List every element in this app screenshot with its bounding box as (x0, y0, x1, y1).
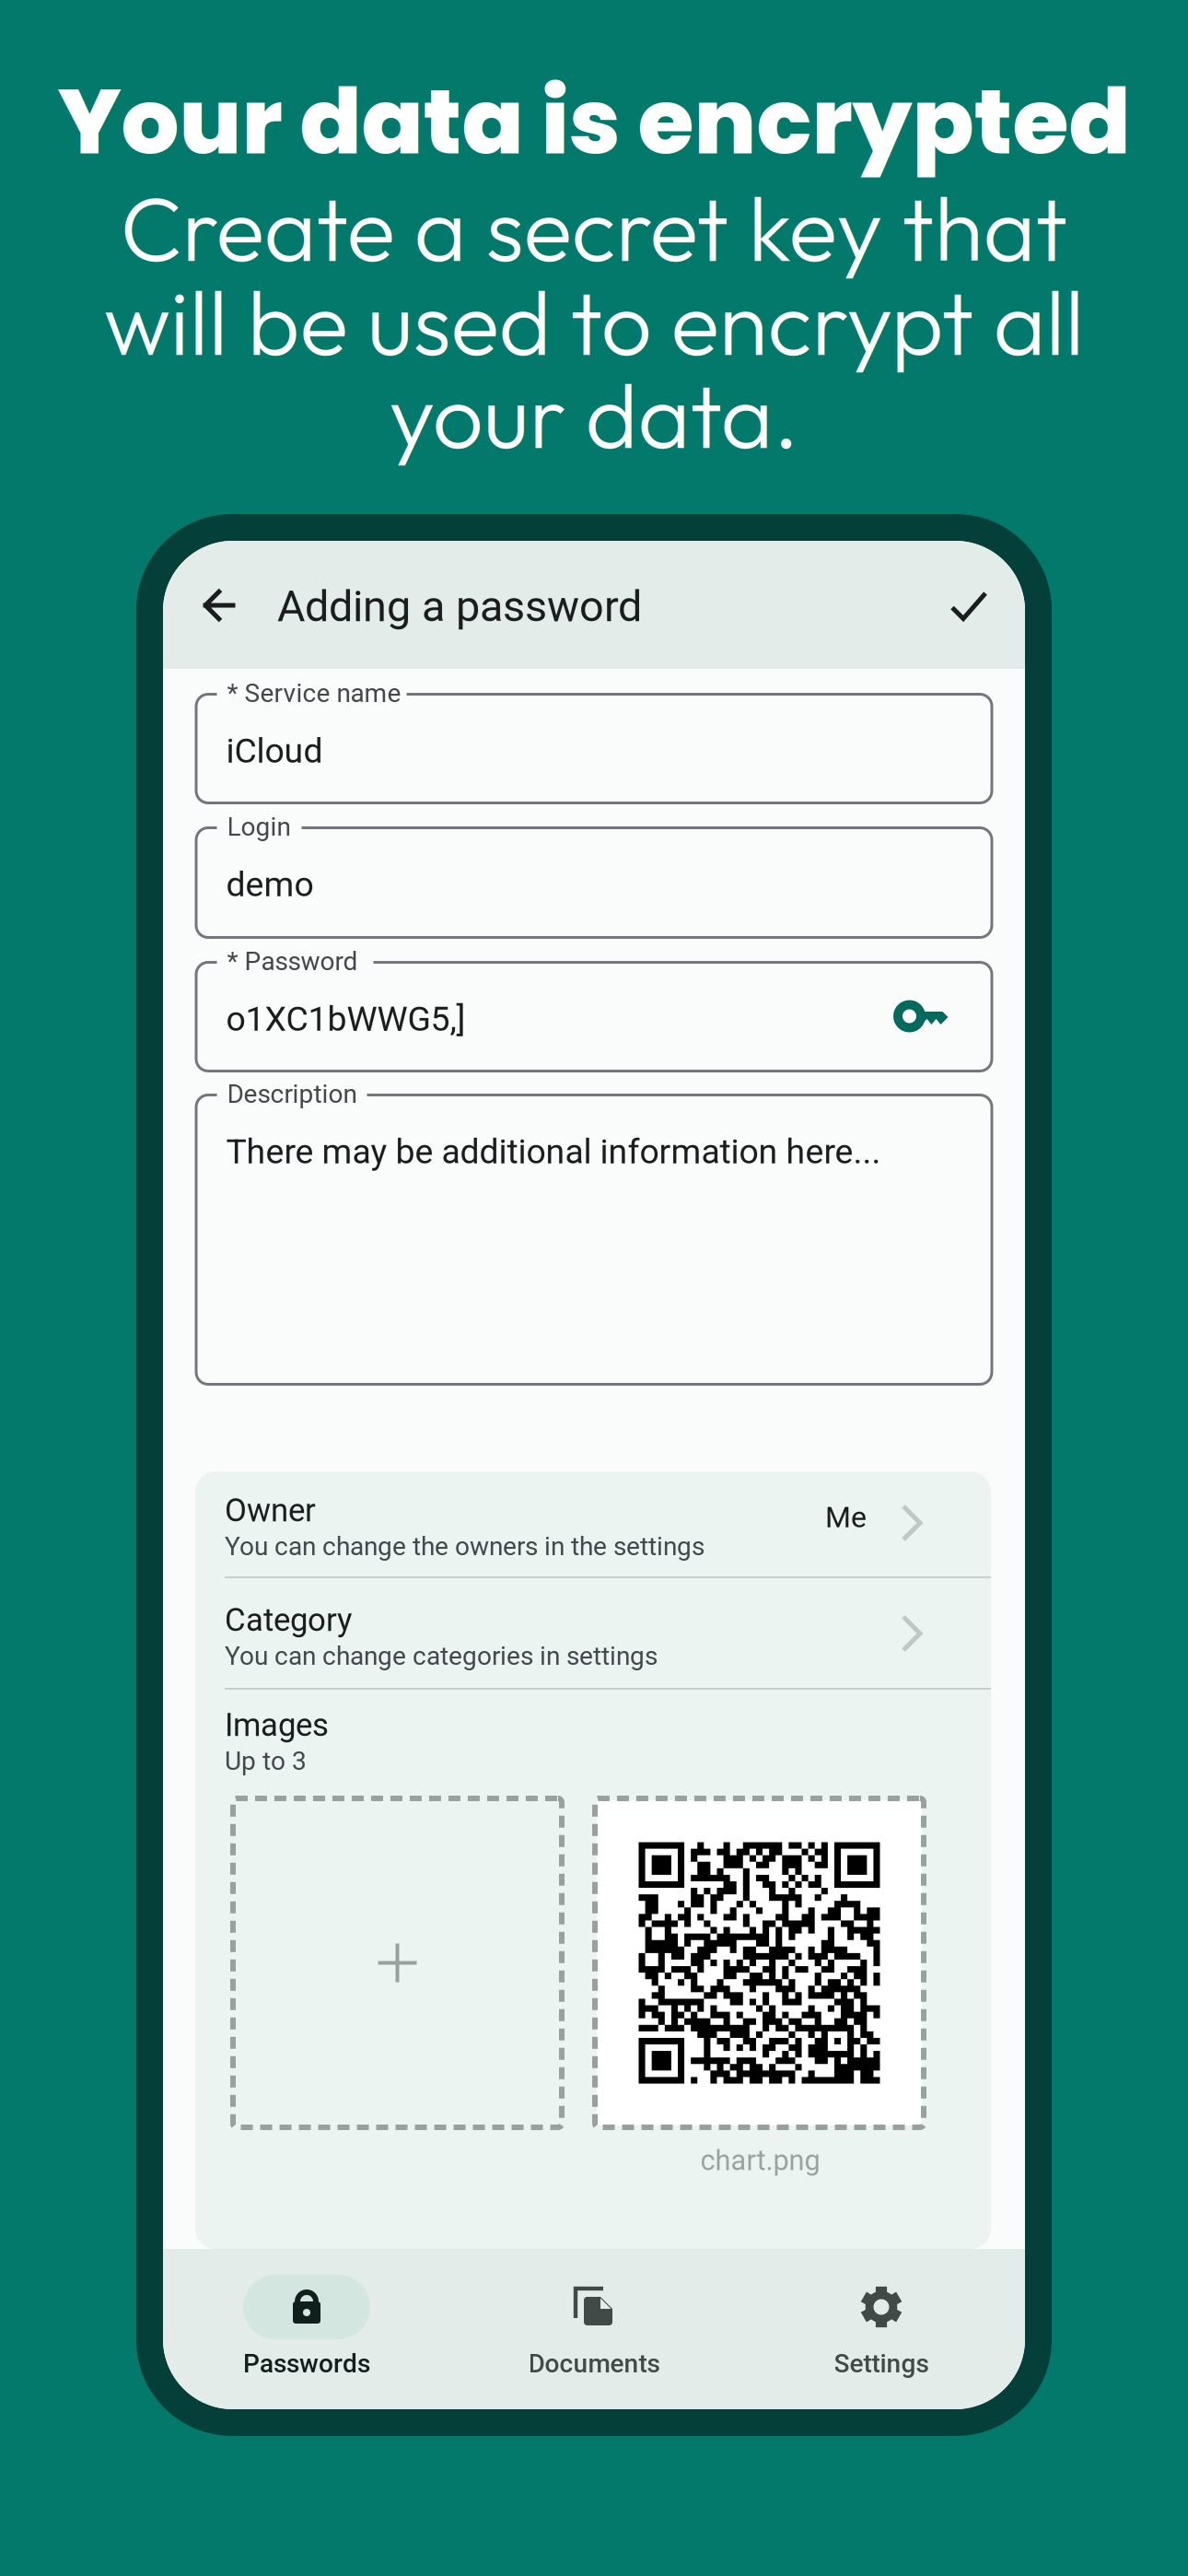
staticText: Up to 3 (225, 1746, 307, 1776)
staticText: * Service name (227, 678, 401, 708)
button[interactable]: Category (195, 1578, 991, 1690)
staticText: Me (825, 1500, 867, 1534)
button[interactable]: Settings (738, 2249, 1025, 2409)
staticText: Login (227, 812, 291, 842)
staticText: o1XC1bWWG5,] (226, 999, 466, 1039)
button[interactable]: Passwords (163, 2249, 450, 2409)
staticText: Settings (834, 2348, 929, 2379)
staticText: There may be additional information here… (226, 1131, 881, 1172)
staticText: Images (225, 1706, 329, 1744)
staticText: Description (227, 1079, 357, 1109)
button[interactable]: Generate password (885, 981, 959, 1055)
staticText: Owner (225, 1492, 316, 1529)
staticText: You can change the owners in the setting… (225, 1531, 705, 1561)
button[interactable]: Back (175, 561, 263, 650)
staticText: Create a secret key that (120, 171, 1068, 284)
button[interactable]: Save (925, 562, 1013, 650)
button[interactable]: Documents (450, 2249, 738, 2409)
staticText: Your data is encrypted (58, 58, 1130, 185)
staticText: your data. (389, 358, 799, 471)
staticText: Passwords (243, 2348, 370, 2379)
staticText: Category (225, 1601, 352, 1639)
staticText: iCloud (226, 731, 323, 771)
button[interactable]: Owner (195, 1471, 991, 1576)
staticText: chart.png (700, 2144, 820, 2177)
staticText: You can change categories in settings (225, 1641, 658, 1671)
button[interactable]: Add image (230, 1796, 565, 2130)
staticText: Adding a password (277, 581, 642, 632)
staticText: * Password (227, 946, 358, 976)
staticText: demo (226, 864, 314, 904)
staticText: will be used to encrypt all (104, 265, 1084, 378)
staticText: Documents (528, 2348, 660, 2379)
